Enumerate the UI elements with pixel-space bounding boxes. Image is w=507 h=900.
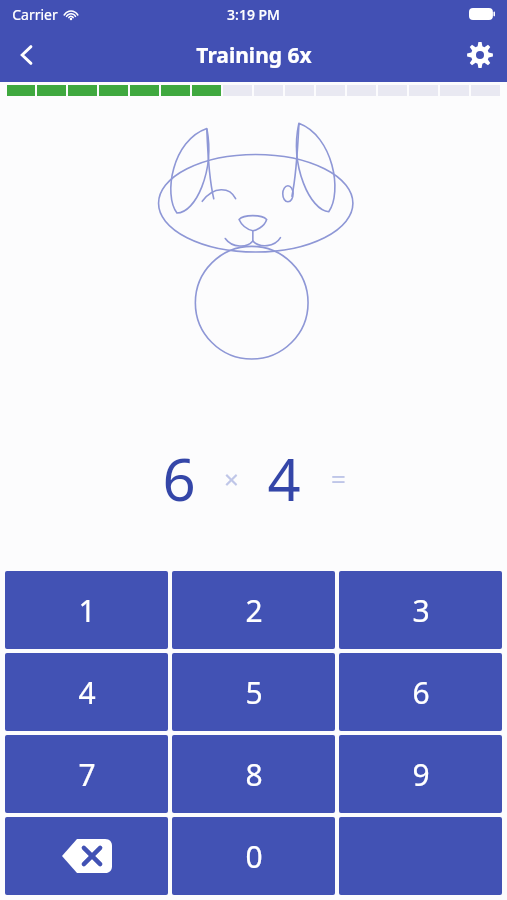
staticText: 9 bbox=[412, 754, 430, 795]
staticText: 6 bbox=[162, 439, 196, 518]
button[interactable]: 9 bbox=[339, 735, 502, 813]
button[interactable]: 5 bbox=[172, 653, 335, 731]
staticText: 1 bbox=[78, 590, 96, 631]
staticText: = bbox=[331, 461, 346, 496]
staticText: 5 bbox=[245, 672, 263, 713]
button[interactable]: 0 bbox=[172, 817, 335, 895]
button[interactable]: Backspace bbox=[5, 817, 168, 895]
button[interactable]: 2 bbox=[172, 571, 335, 649]
staticText: 3 bbox=[412, 590, 430, 631]
staticText: Training 6x bbox=[196, 41, 312, 70]
staticText: 0 bbox=[245, 836, 263, 877]
button[interactable]: 8 bbox=[172, 735, 335, 813]
staticText: 8 bbox=[245, 754, 263, 795]
staticText: 4 bbox=[267, 439, 301, 518]
button[interactable]: 3 bbox=[339, 571, 502, 649]
staticText: 7 bbox=[78, 754, 96, 795]
button[interactable]: Settings bbox=[453, 28, 507, 82]
staticText: Carrier bbox=[12, 5, 58, 24]
staticText: 2 bbox=[245, 590, 263, 631]
staticText: 4 bbox=[78, 672, 96, 713]
staticText: 6 bbox=[412, 672, 430, 713]
button[interactable]: 7 bbox=[5, 735, 168, 813]
staticText: 3:19 PM bbox=[227, 5, 280, 24]
staticText: × bbox=[224, 461, 239, 496]
button[interactable]: Back bbox=[0, 28, 54, 82]
button[interactable]: 1 bbox=[5, 571, 168, 649]
button[interactable]: 4 bbox=[5, 653, 168, 731]
button[interactable]: 6 bbox=[339, 653, 502, 731]
